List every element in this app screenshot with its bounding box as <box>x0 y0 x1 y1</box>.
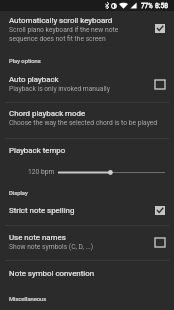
button[interactable]: Use note names <box>0 231 174 253</box>
staticText: Use note names <box>9 233 66 242</box>
staticText: Playback tempo <box>9 146 66 155</box>
button[interactable]: Note symbol convention <box>0 266 174 280</box>
button[interactable]: Playback tempo <box>0 146 174 182</box>
button[interactable]: Strict note spelling <box>0 203 174 217</box>
staticText: Miscellaneous <box>9 296 47 303</box>
other: Checked <box>155 24 165 33</box>
staticText: Play options <box>9 58 41 65</box>
staticText: Display <box>9 190 28 197</box>
staticText: Chord playback mode <box>9 109 86 118</box>
staticText: Show note symbols (C, D, ...) <box>9 243 94 251</box>
staticText: Auto playback <box>9 75 59 84</box>
staticText: Choose the way the selected chord is to … <box>9 119 158 127</box>
staticText: Scroll piano keyboard if the new note se… <box>9 26 119 42</box>
button[interactable]: Auto playback <box>0 73 174 95</box>
staticText: Playback is only invoked manually <box>9 85 110 93</box>
other: Unchecked <box>155 238 165 247</box>
staticText: Note symbol convention <box>9 269 95 278</box>
button[interactable]: Chord playback mode <box>0 107 174 129</box>
button[interactable]: Automatically scroll keyboard <box>0 13 174 44</box>
staticText: 8:58 <box>155 2 169 10</box>
other: Checked <box>155 206 165 215</box>
other: Unchecked <box>155 80 165 89</box>
staticText: Strict note spelling <box>9 206 75 215</box>
staticText: Automatically scroll keyboard <box>9 16 113 25</box>
staticText: 120 bpm <box>28 168 55 176</box>
staticText: 77% <box>141 2 153 9</box>
